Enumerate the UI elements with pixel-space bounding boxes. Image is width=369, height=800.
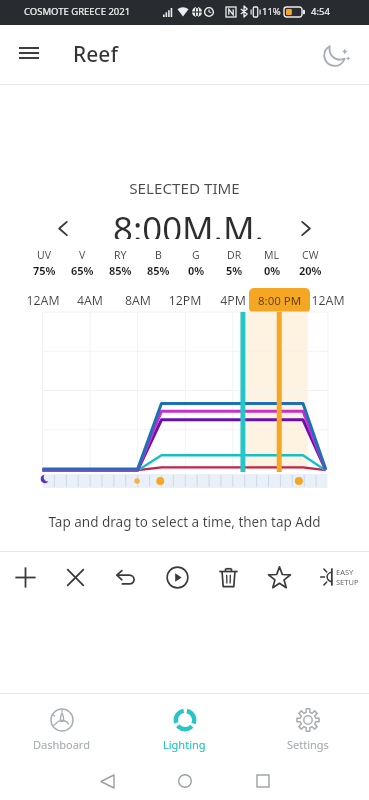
button[interactable]: Undo [101, 552, 152, 602]
button[interactable]: Lighting [123, 700, 246, 760]
staticText: V [79, 248, 86, 262]
button[interactable]: Close [50, 552, 101, 602]
button[interactable]: Play [152, 552, 203, 602]
staticText: 20% [299, 263, 322, 278]
button[interactable]: Back [87, 762, 127, 800]
staticText: COSMOTE GREECE 2021 [24, 5, 131, 18]
staticText: 8:00M.M. [113, 205, 264, 239]
staticText: EASY [336, 567, 354, 577]
button[interactable]: 8:00 PM [249, 288, 310, 313]
button[interactable]: Dashboard [0, 700, 123, 760]
staticText: Reef [73, 40, 118, 69]
staticText: B [155, 248, 162, 262]
button[interactable]: Add [0, 552, 50, 602]
button[interactable]: Settings [246, 700, 369, 760]
staticText: Settings [287, 737, 329, 752]
staticText: Dashboard [33, 737, 90, 752]
button[interactable]: Open navigation menu [5, 31, 53, 79]
button[interactable]: Favorite [254, 552, 305, 602]
staticText: 0% [188, 263, 205, 278]
staticText: 0% [264, 263, 281, 278]
staticText: 5% [226, 263, 243, 278]
button[interactable]: Night mode [313, 31, 361, 79]
staticText: 85% [147, 263, 170, 278]
button[interactable]: Recent apps [243, 762, 283, 800]
staticText: CW [302, 248, 319, 262]
button[interactable]: Delete [203, 552, 254, 602]
staticText: 11% [262, 5, 281, 18]
staticText: Tap and drag to select a time, then tap … [0, 513, 369, 531]
staticText: SELECTED TIME [0, 178, 369, 199]
staticText: SETUP [336, 577, 359, 587]
staticText: 8AM [116, 292, 160, 309]
staticText: 8:00 PM [258, 293, 302, 309]
staticText: Lighting [163, 737, 206, 752]
staticText: 4PM [211, 292, 255, 309]
staticText: 12PM [163, 292, 207, 309]
staticText: ML [264, 248, 280, 262]
staticText: G [192, 248, 200, 262]
staticText: RY [114, 248, 127, 262]
staticText: 12AM [21, 292, 65, 309]
staticText: 65% [71, 263, 94, 278]
staticText: 4AM [68, 292, 112, 309]
staticText: 12AM [306, 292, 350, 309]
button[interactable]: Home [165, 762, 205, 800]
staticText: DR [227, 248, 242, 262]
button[interactable]: Previous hour [42, 211, 84, 245]
staticText: UV [37, 248, 51, 262]
staticText: 75% [33, 263, 56, 278]
button[interactable]: Next hour [285, 211, 327, 245]
button[interactable]: Easy setup [305, 552, 369, 602]
staticText: 4:54 [311, 5, 330, 18]
staticText: 85% [109, 263, 132, 278]
